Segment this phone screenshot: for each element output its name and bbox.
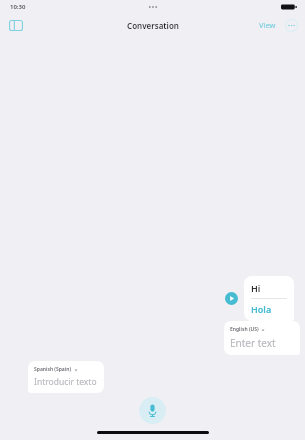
staticText: Introducir texto (34, 376, 97, 388)
button[interactable]: More options (282, 16, 300, 34)
staticText: Enter text (230, 336, 276, 350)
staticText: English (US) (230, 326, 259, 333)
button[interactable]: English (US) (224, 321, 300, 355)
button[interactable]: Show sidebar (4, 13, 28, 37)
staticText: View (259, 20, 276, 30)
staticText: Spanish (Spain) (34, 366, 72, 373)
button[interactable]: Spanish (Spain) (28, 361, 104, 393)
button[interactable]: Start listening (139, 397, 166, 424)
staticText: Conversation (127, 20, 179, 31)
staticText: 10:30 (10, 3, 26, 11)
staticText: Hola (251, 303, 272, 315)
button[interactable]: Play translation (224, 291, 239, 306)
button[interactable]: View (256, 17, 279, 33)
staticText: Hi (251, 282, 261, 294)
button[interactable]: Hi (244, 276, 294, 321)
